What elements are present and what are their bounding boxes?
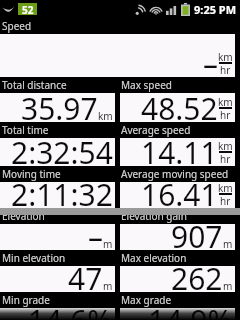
- other: Battery: [181, 3, 190, 16]
- staticText: Min grade: [2, 293, 50, 307]
- other: GPS: [134, 4, 146, 16]
- staticText: -14.6%: [18, 300, 113, 320]
- button[interactable]: [120, 224, 235, 250]
- staticText: hr: [220, 108, 231, 122]
- button[interactable]: [0, 93, 115, 122]
- button[interactable]: [0, 224, 115, 250]
- staticText: km: [218, 50, 233, 64]
- staticText: –: [88, 216, 103, 257]
- staticText: 2:32:54: [11, 132, 113, 173]
- staticText: Max grade: [121, 293, 172, 307]
- staticText: 14.11: [141, 132, 218, 173]
- other: Twitter notification: [2, 4, 15, 15]
- staticText: Max speed: [121, 78, 172, 92]
- other: Wi-Fi: [150, 4, 162, 16]
- staticText: Speed: [2, 19, 32, 33]
- staticText: Total distance: [2, 78, 67, 92]
- staticText: km: [218, 139, 233, 153]
- button[interactable]: [0, 138, 115, 166]
- button[interactable]: [120, 138, 235, 166]
- button[interactable]: [120, 266, 235, 292]
- staticText: Average speed: [121, 123, 191, 137]
- staticText: m: [103, 279, 113, 293]
- staticText: m: [223, 279, 233, 293]
- other: Signal: [166, 4, 177, 15]
- staticText: hr: [220, 194, 231, 208]
- staticText: 262: [171, 258, 223, 299]
- staticText: m: [223, 237, 233, 251]
- staticText: km: [98, 109, 113, 123]
- staticText: Max elevation: [121, 251, 187, 265]
- staticText: 35.97: [21, 88, 98, 129]
- staticText: m: [103, 237, 113, 251]
- staticText: Average moving speed: [121, 167, 229, 181]
- button[interactable]: [120, 182, 235, 208]
- staticText: 2:11:32: [11, 174, 113, 215]
- staticText: 9:25 PM: [194, 2, 237, 17]
- staticText: 907: [171, 216, 223, 257]
- staticText: –: [203, 43, 218, 84]
- staticText: km: [218, 181, 233, 195]
- staticText: 16.41: [141, 174, 218, 215]
- staticText: 14.9%: [148, 300, 233, 320]
- staticText: hr: [220, 63, 231, 77]
- button[interactable]: [0, 34, 235, 77]
- staticText: 52: [22, 3, 34, 15]
- button[interactable]: [120, 93, 235, 122]
- staticText: 47: [68, 258, 103, 299]
- staticText: km: [218, 95, 233, 109]
- button[interactable]: [0, 182, 115, 208]
- staticText: Elevation: [2, 209, 45, 223]
- staticText: 48.52: [141, 88, 218, 129]
- button[interactable]: [120, 308, 235, 320]
- button[interactable]: [0, 308, 115, 320]
- staticText: Elevation gain: [121, 209, 187, 223]
- button[interactable]: [0, 266, 115, 292]
- staticText: Min elevation: [2, 251, 66, 265]
- staticText: Total time: [2, 123, 49, 137]
- staticText: Moving time: [2, 167, 61, 181]
- staticText: hr: [220, 152, 231, 166]
